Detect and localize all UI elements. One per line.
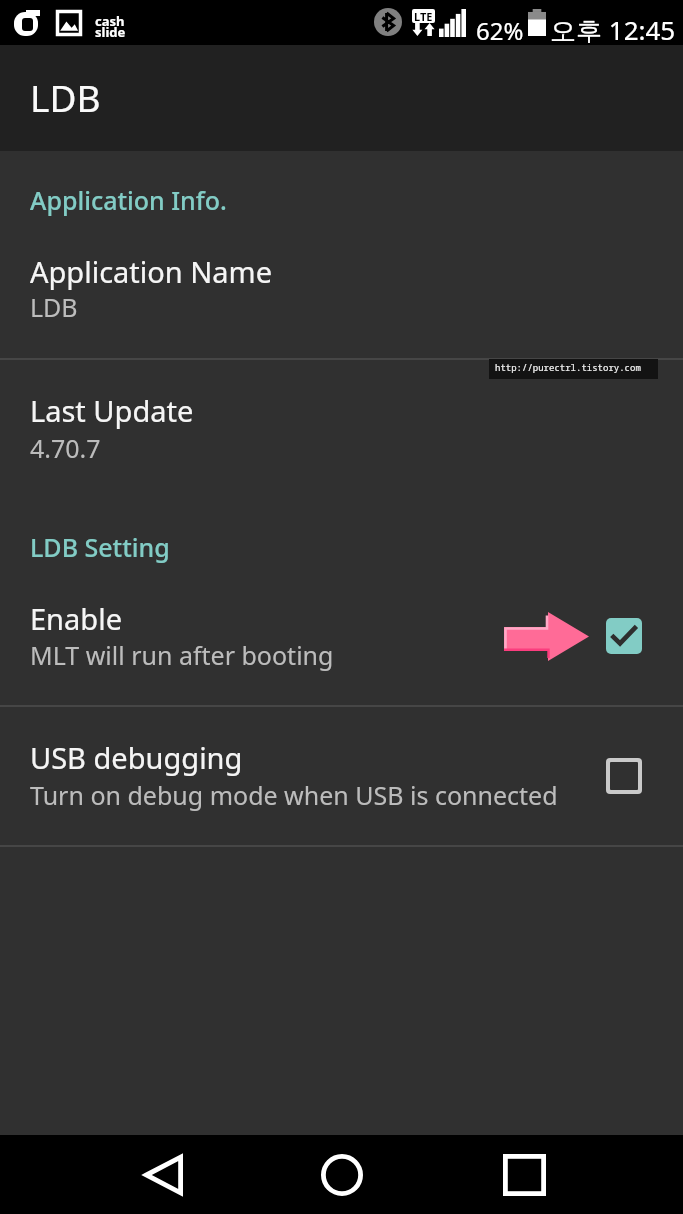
button[interactable]: Last Update — [0, 360, 683, 520]
staticText: Turn on debug mode when USB is connected — [30, 778, 558, 812]
staticText: 62% — [476, 14, 524, 47]
staticText: http://purectrl.tistory.com — [495, 361, 641, 373]
staticText: 4.70.7 — [30, 431, 101, 465]
button[interactable]: Home — [292, 1135, 392, 1214]
button[interactable]: USB debugging, unchecked — [606, 758, 642, 794]
staticText: LDB — [30, 72, 101, 122]
button[interactable]: Recent apps — [474, 1135, 574, 1214]
button[interactable]: Application Name — [0, 151, 683, 358]
button[interactable]: USB debugging, Turn on debug mode when U… — [0, 707, 683, 845]
staticText: LTE — [414, 9, 433, 23]
staticText: Enable — [30, 599, 122, 638]
button[interactable]: Back — [113, 1135, 213, 1214]
staticText: Application Info. — [30, 183, 227, 217]
staticText: slide — [95, 23, 126, 41]
button[interactable]: Enable, checked — [606, 618, 642, 654]
staticText: Last Update — [30, 391, 194, 430]
staticText: USB debugging — [30, 738, 243, 777]
staticText: MLT will run after booting — [30, 638, 334, 672]
staticText: LDB — [30, 290, 78, 324]
button[interactable]: Enable, MLT will run after booting — [0, 580, 683, 705]
staticText: 오후 12:45 — [550, 12, 676, 48]
staticText: Application Name — [30, 252, 273, 291]
staticText: cash — [95, 12, 125, 30]
staticText: LDB Setting — [30, 530, 170, 564]
